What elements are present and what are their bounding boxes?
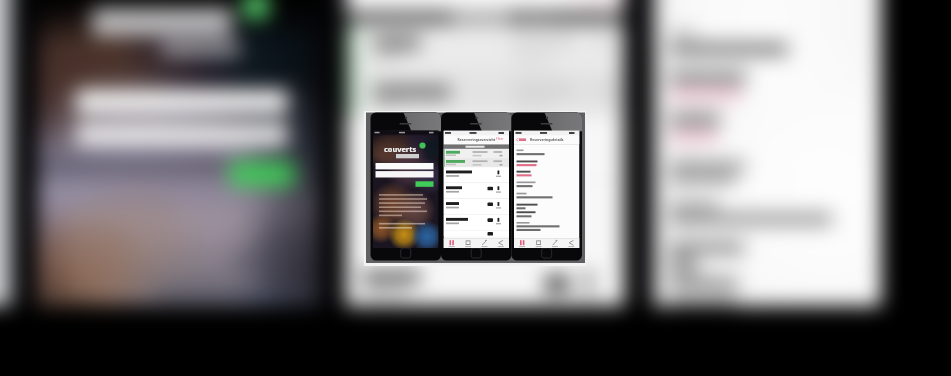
button[interactable]: App screenshot preview	[364, 111, 586, 266]
